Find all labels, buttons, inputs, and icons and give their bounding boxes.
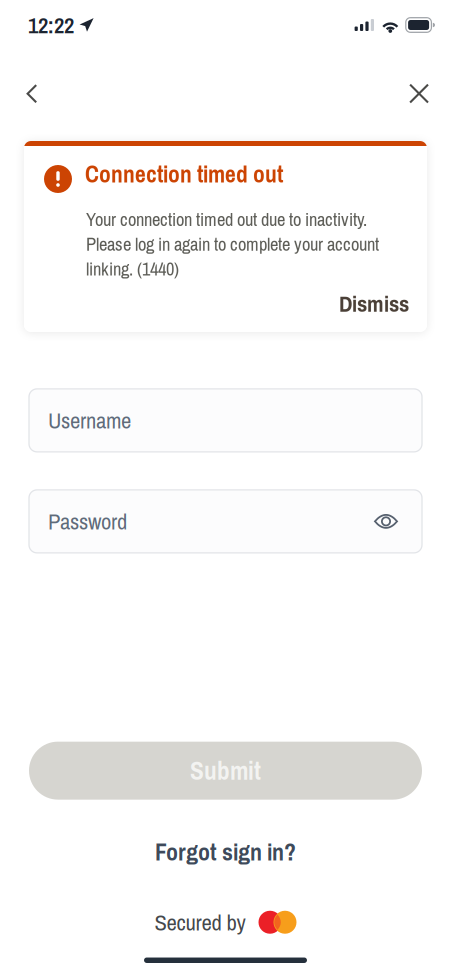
button[interactable]: Show password <box>364 499 408 543</box>
button[interactable]: Dismiss <box>339 288 409 319</box>
staticText: Secured by <box>154 907 245 937</box>
button[interactable]: Forgot sign in? <box>135 824 316 880</box>
staticText: Dismiss <box>339 288 409 319</box>
staticText: Username <box>48 405 131 436</box>
button[interactable]: Back <box>10 71 54 115</box>
staticText: Connection timed out <box>85 158 283 190</box>
staticText: Password <box>48 506 127 537</box>
button[interactable]: Close <box>397 71 441 115</box>
staticText: 12:22 <box>28 10 74 40</box>
staticText: Submit <box>190 754 261 788</box>
staticText: Your connection timed out due to inactiv… <box>86 207 379 281</box>
button[interactable]: Submit <box>29 742 422 800</box>
staticText: Forgot sign in? <box>155 836 296 868</box>
